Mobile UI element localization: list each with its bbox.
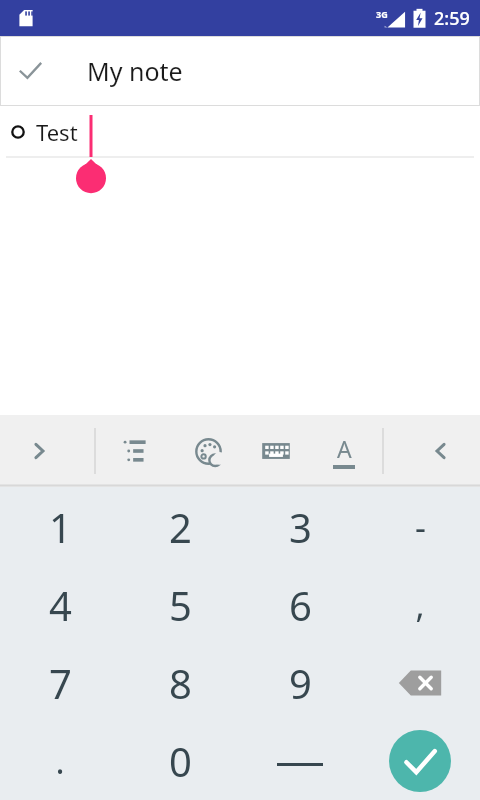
button[interactable]: 9	[240, 644, 360, 722]
button[interactable]: 8	[120, 644, 240, 722]
button[interactable]: .	[0, 722, 120, 800]
button[interactable]: 1	[0, 487, 120, 566]
button[interactable]: Keyboard	[249, 424, 303, 478]
button[interactable]: 6	[240, 566, 360, 644]
button[interactable]: Enter	[360, 722, 480, 800]
button[interactable]: 7	[0, 644, 120, 722]
button[interactable]: Text format	[317, 424, 371, 478]
button[interactable]: 4	[0, 566, 120, 644]
button[interactable]: ,	[360, 566, 480, 644]
button[interactable]: Done	[0, 41, 60, 101]
button[interactable]: Expand	[10, 422, 68, 480]
staticText: ,	[415, 582, 425, 628]
staticText: 4	[49, 578, 72, 632]
button[interactable]: Collapse	[412, 422, 470, 480]
button[interactable]: Checkbox	[0, 106, 36, 158]
staticText: 2:59	[434, 6, 470, 31]
staticText: 3	[289, 500, 312, 554]
button[interactable]: Space	[240, 722, 360, 800]
button[interactable]: Bullet list	[109, 424, 163, 478]
staticText: A	[337, 433, 352, 464]
button[interactable]: 3	[240, 487, 360, 566]
button[interactable]: 5	[120, 566, 240, 644]
staticText: Test	[36, 117, 78, 147]
staticText: 0	[169, 734, 192, 788]
button[interactable]: Color palette	[181, 424, 235, 478]
button[interactable]: 0	[120, 722, 240, 800]
staticText: 5	[169, 578, 192, 632]
button[interactable]: -	[360, 487, 480, 566]
staticText: 8	[169, 656, 192, 710]
button[interactable]: Delete	[360, 644, 480, 722]
staticText: 7	[49, 656, 72, 710]
staticText: .	[55, 738, 65, 784]
staticText: 2	[169, 500, 192, 554]
staticText: 3G	[376, 8, 388, 20]
staticText: My note	[87, 54, 183, 88]
staticText: 6	[289, 578, 312, 632]
staticText: 9	[289, 656, 312, 710]
button[interactable]: 2	[120, 487, 240, 566]
staticText: -	[415, 504, 426, 550]
staticText: 1	[49, 500, 72, 554]
